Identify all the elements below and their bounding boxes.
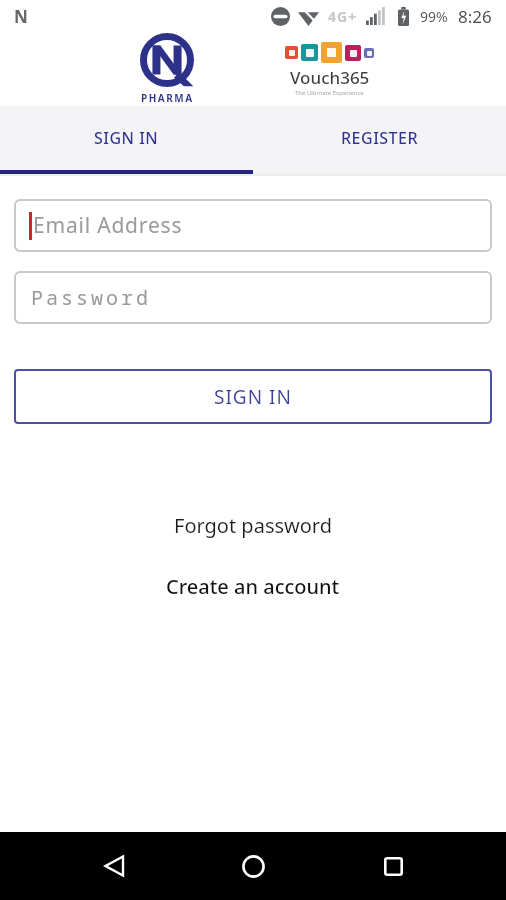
button[interactable]: SIGN IN bbox=[0, 106, 253, 170]
staticText: N bbox=[14, 5, 28, 28]
button[interactable] bbox=[43, 832, 183, 900]
button[interactable]: SIGN IN bbox=[14, 369, 492, 424]
staticText: 4G+ bbox=[328, 7, 358, 26]
staticText: Forgot password bbox=[174, 512, 333, 539]
staticText: SIGN IN bbox=[94, 127, 159, 149]
button[interactable]: REGISTER bbox=[253, 106, 506, 170]
button[interactable] bbox=[323, 832, 463, 900]
staticText: PHARMA bbox=[141, 91, 194, 105]
staticText: 8:26 bbox=[458, 5, 492, 28]
staticText: Vouch365 bbox=[290, 66, 370, 89]
staticText: The Ultimate Experience bbox=[295, 89, 364, 97]
staticText: Password bbox=[31, 284, 151, 311]
button[interactable]: Forgot password bbox=[14, 512, 492, 539]
button[interactable]: Email Address bbox=[14, 199, 492, 252]
staticText: SIGN IN bbox=[214, 384, 292, 410]
staticText: REGISTER bbox=[341, 127, 419, 149]
staticText: Email Address bbox=[33, 211, 183, 240]
staticText: 99% bbox=[420, 7, 448, 26]
button[interactable]: Create an account bbox=[14, 573, 492, 600]
button[interactable] bbox=[183, 832, 323, 900]
staticText: Create an account bbox=[166, 573, 340, 600]
button[interactable]: Password bbox=[14, 271, 492, 324]
